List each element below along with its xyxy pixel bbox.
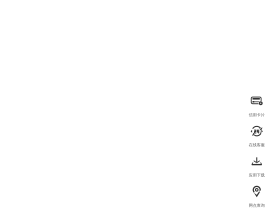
- button[interactable]: 在线客服: [0, 0, 280, 210]
- button[interactable]: 网点查询: [0, 0, 280, 210]
- staticText: 信用卡片: [249, 112, 265, 117]
- staticText: 应用下载: [249, 173, 265, 178]
- button[interactable]: 应用下载: [0, 0, 280, 210]
- button[interactable]: 信用卡片: [0, 0, 280, 210]
- staticText: 网点查询: [249, 203, 265, 208]
- staticText: 在线客服: [249, 142, 265, 147]
